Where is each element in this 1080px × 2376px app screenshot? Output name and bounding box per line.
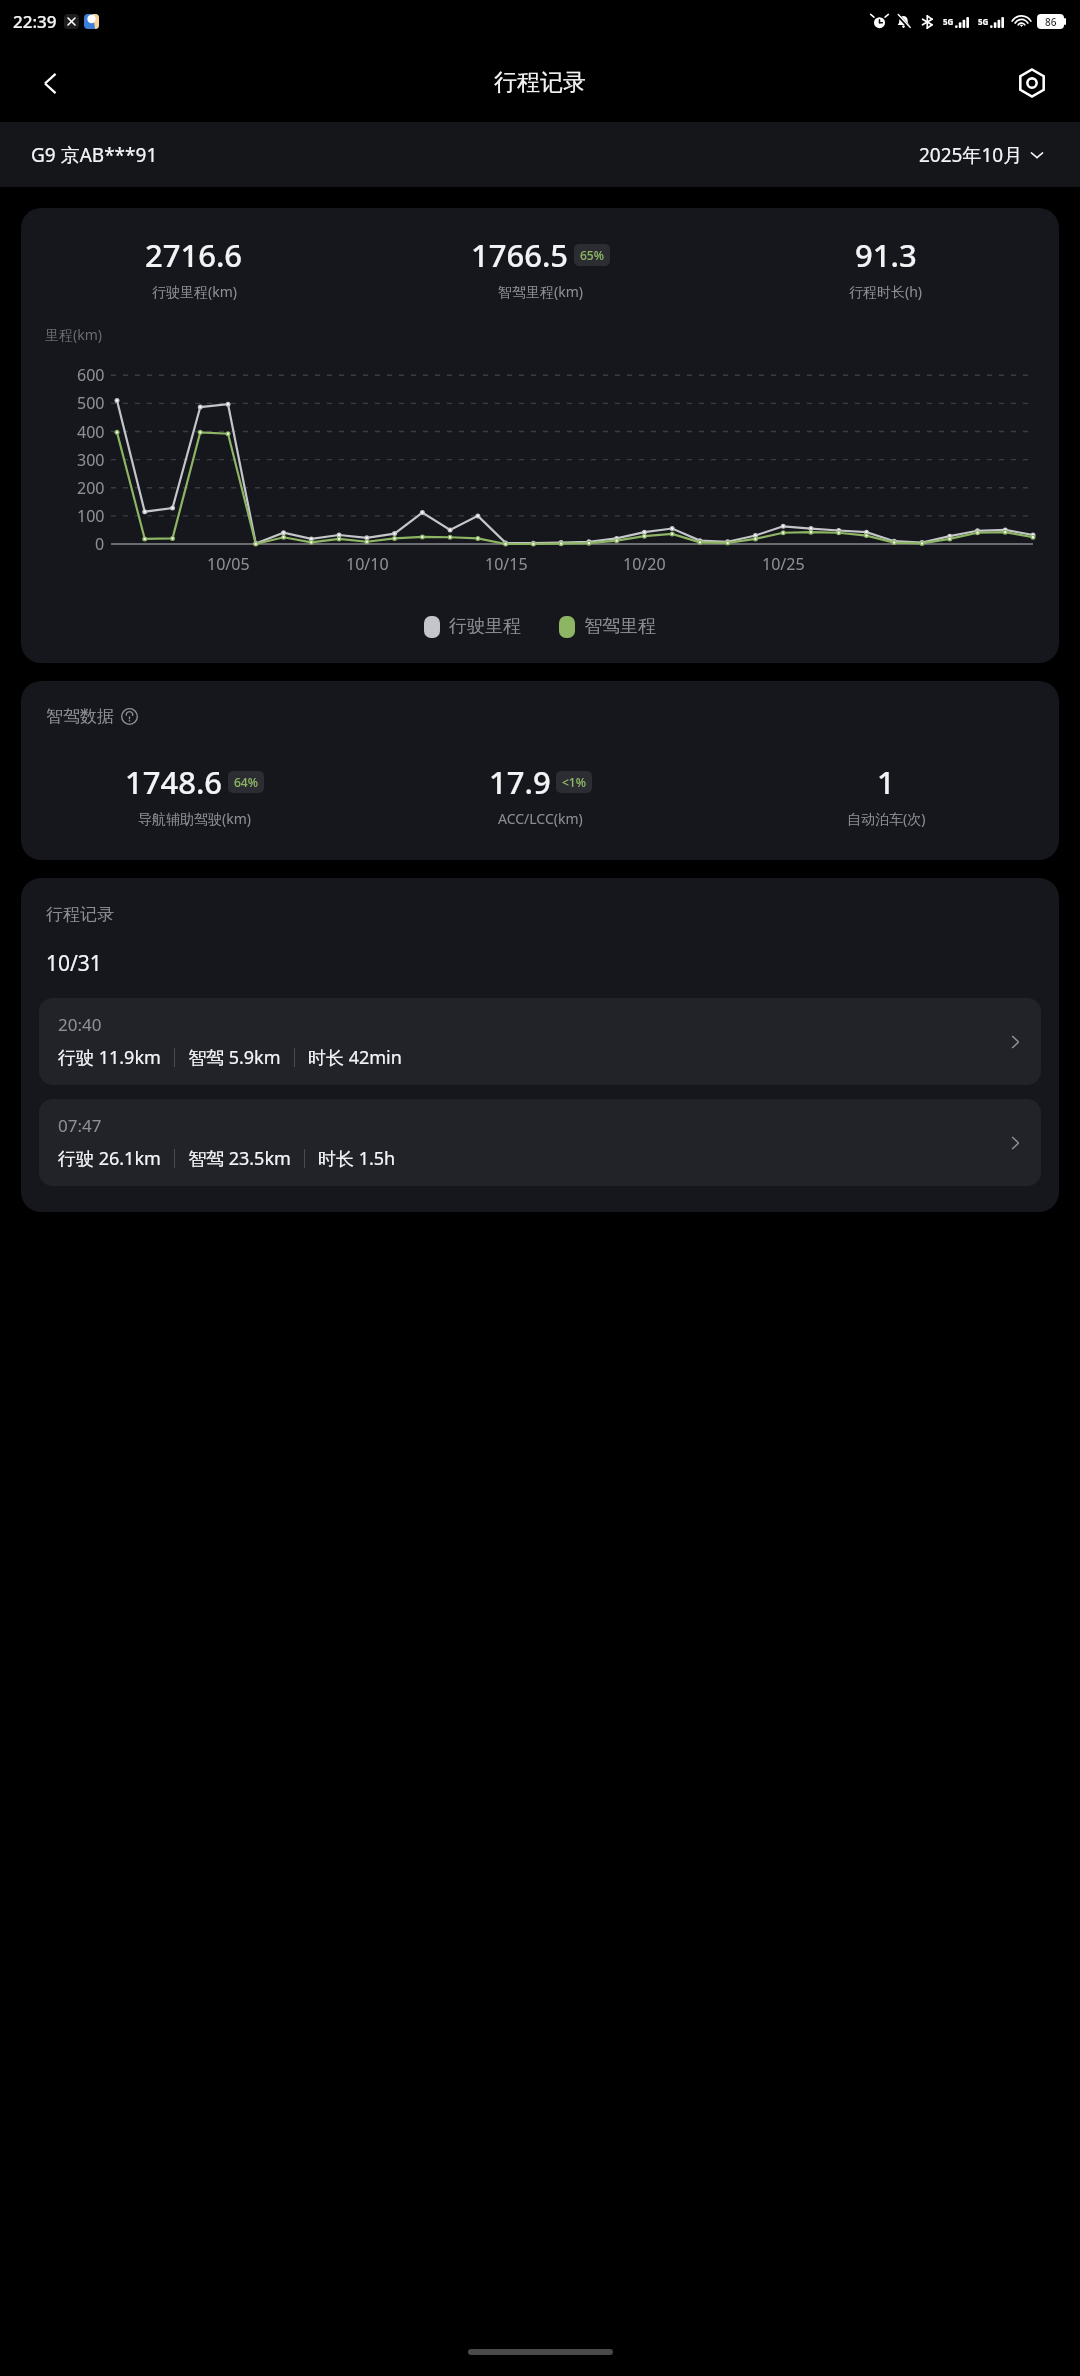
button[interactable]: 2025年10月 <box>915 138 1049 172</box>
staticText: 2716.6 <box>145 234 243 276</box>
staticText: 91.3 <box>855 234 917 276</box>
staticText: 行程记录 <box>46 904 114 925</box>
staticText: 10/20 <box>623 553 666 575</box>
staticText: 时长 1.5h <box>318 1146 396 1171</box>
staticText: 智驾 23.5km <box>188 1146 291 1171</box>
staticText: 400 <box>77 421 105 443</box>
staticText: 07:47 <box>58 1114 102 1137</box>
staticText: 10/25 <box>762 553 805 575</box>
staticText: 智驾里程(km) <box>498 282 583 301</box>
staticText: 600 <box>77 364 105 386</box>
staticText: 1748.6 <box>125 761 223 803</box>
staticText: 时长 42min <box>308 1045 402 1070</box>
staticText: 10/15 <box>485 553 528 575</box>
button[interactable]: Settings <box>1008 59 1056 107</box>
staticText: <1% <box>562 774 586 790</box>
staticText: 0 <box>95 533 105 555</box>
staticText: 5G <box>943 16 954 27</box>
staticText: 1 <box>877 761 895 803</box>
staticText: 17.9 <box>489 761 551 803</box>
staticText: 22:39 <box>13 10 57 33</box>
staticText: 86 <box>1045 15 1057 29</box>
staticText: 64% <box>234 774 258 790</box>
staticText: 行驶里程(km) <box>152 282 237 301</box>
staticText: 里程(km) <box>45 325 102 344</box>
button[interactable]: Back <box>26 59 74 107</box>
staticText: 300 <box>77 449 105 471</box>
staticText: 自动泊车(次) <box>847 809 926 828</box>
staticText: 10/10 <box>346 553 389 575</box>
button[interactable]: 07:47 <box>39 1099 1041 1186</box>
staticText: 行程记录 <box>494 68 586 97</box>
staticText: 500 <box>77 392 105 414</box>
staticText: 20:40 <box>58 1013 102 1036</box>
staticText: 65% <box>580 247 604 263</box>
button[interactable]: 行驶里程 <box>421 612 524 641</box>
staticText: 200 <box>77 477 105 499</box>
staticText: 1766.5 <box>471 234 569 276</box>
staticText: 10/31 <box>46 949 102 978</box>
staticText: 5G <box>978 16 989 27</box>
staticText: 2025年10月 <box>919 142 1023 168</box>
staticText: 行驶 26.1km <box>58 1146 161 1171</box>
button[interactable]: 20:40 <box>39 998 1041 1085</box>
staticText: 行驶 11.9km <box>58 1045 161 1070</box>
staticText: 行程时长(h) <box>849 282 923 301</box>
staticText: 智驾数据 <box>46 706 114 727</box>
staticText: 10/05 <box>207 553 250 575</box>
staticText: 100 <box>77 505 105 527</box>
staticText: 导航辅助驾驶(km) <box>138 809 251 828</box>
button[interactable]: 智驾里程 <box>556 612 659 641</box>
staticText: 行驶里程 <box>449 615 521 638</box>
staticText: ACC/LCC(km) <box>498 809 583 828</box>
staticText: 智驾里程 <box>584 615 656 638</box>
staticText: 智驾 5.9km <box>188 1045 281 1070</box>
staticText: G9 京AB***91 <box>31 142 158 168</box>
button[interactable]: Help <box>118 705 140 727</box>
